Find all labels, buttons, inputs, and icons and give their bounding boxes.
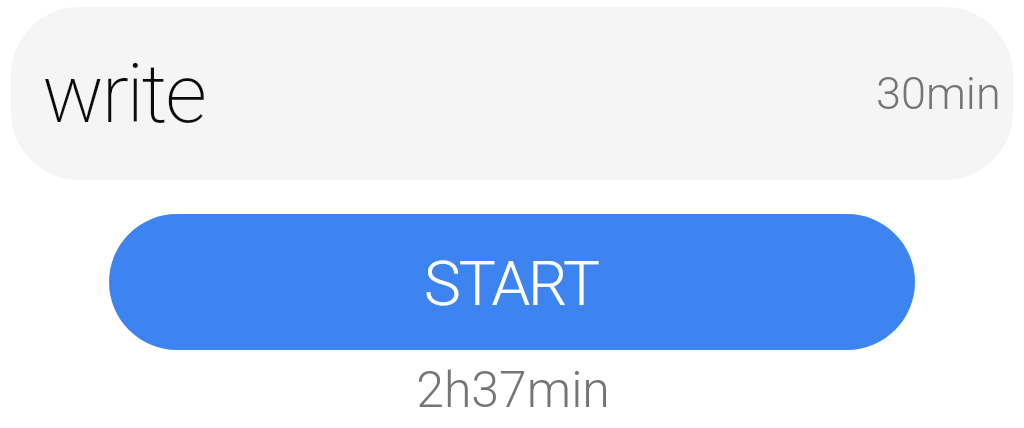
staticText: 2h37min [1, 361, 1024, 420]
staticText: 30min [876, 67, 1001, 120]
staticText: START [424, 247, 599, 320]
button[interactable]: write [11, 7, 1013, 180]
staticText: write [42, 46, 205, 142]
button[interactable]: START [109, 214, 915, 350]
